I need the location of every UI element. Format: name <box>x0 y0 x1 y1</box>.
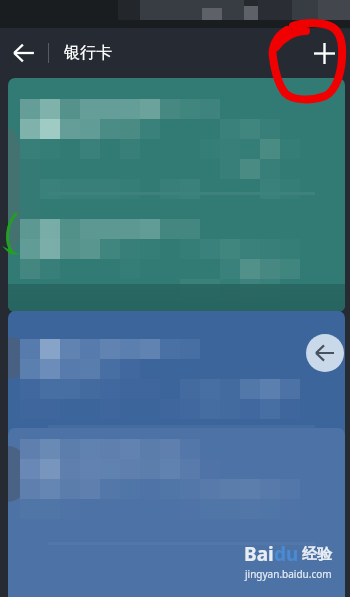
button[interactable]: Back <box>0 29 48 77</box>
button[interactable] <box>8 311 345 545</box>
button[interactable]: Back <box>306 334 344 372</box>
staticText: 银行卡 <box>64 43 112 63</box>
staticText: jingyan.baidu.com <box>245 567 332 581</box>
staticText: du <box>274 541 299 567</box>
button[interactable] <box>8 78 345 312</box>
staticText: Bai <box>244 541 274 567</box>
staticText: 经验 <box>302 545 332 564</box>
button[interactable] <box>8 428 345 597</box>
button[interactable]: Add <box>298 28 350 78</box>
